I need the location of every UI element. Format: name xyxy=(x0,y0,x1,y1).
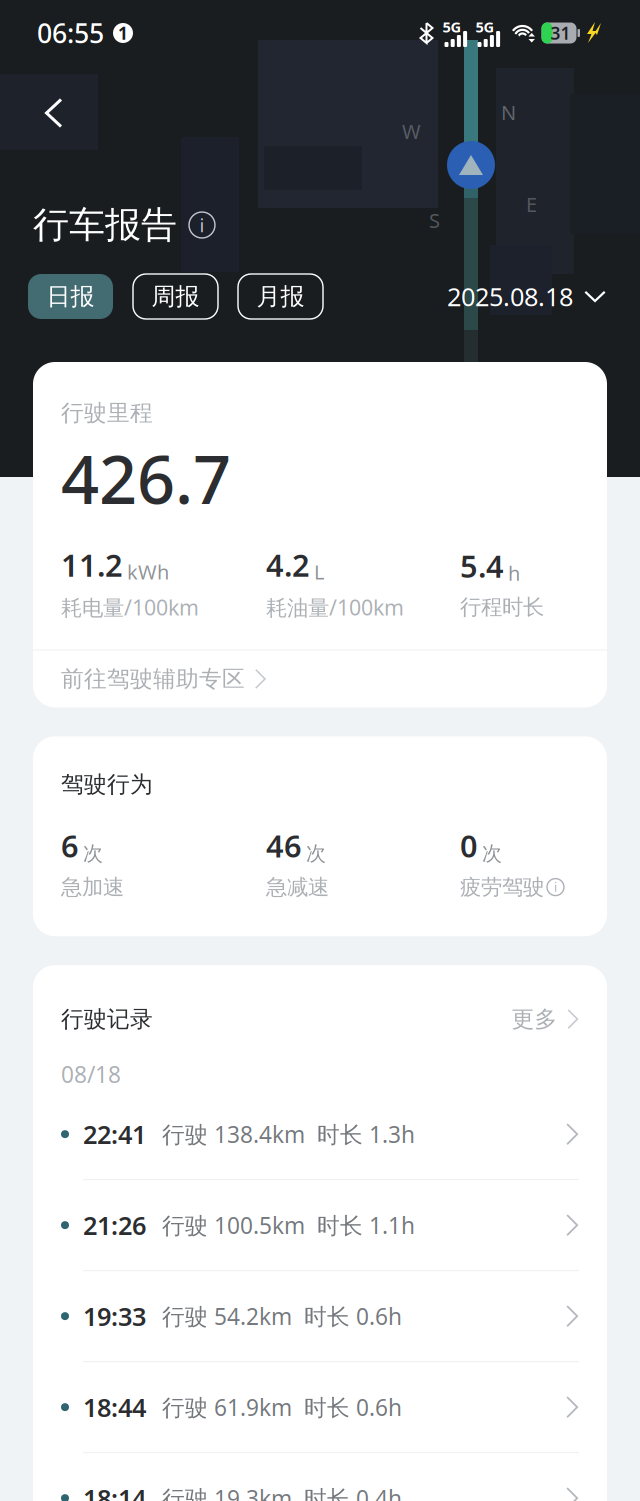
staticText: L xyxy=(314,558,324,585)
staticText: 前往驾驶辅助专区 xyxy=(61,665,245,693)
staticText: 行驶 19.3km 时长 0.4h xyxy=(162,1483,402,1501)
staticText: i xyxy=(199,213,204,237)
staticText: 22:41 xyxy=(83,1117,146,1151)
button[interactable]: 21:26 xyxy=(61,1180,579,1270)
staticText: 0 xyxy=(460,825,478,866)
staticText: kWh xyxy=(127,558,169,585)
staticText: 31 xyxy=(550,21,570,44)
button[interactable]: 行驶记录 xyxy=(61,965,579,1033)
staticText: 11.2 xyxy=(61,544,123,585)
staticText: N xyxy=(501,99,516,126)
staticText: 次 xyxy=(482,841,502,866)
button[interactable]: 日报 xyxy=(28,274,113,319)
button[interactable]: 19:33 xyxy=(61,1271,579,1361)
button[interactable]: 18:14 xyxy=(61,1453,579,1501)
staticText: 耗油量/100km xyxy=(266,593,404,621)
staticText: 次 xyxy=(83,841,103,866)
staticText: S xyxy=(429,207,440,234)
staticText: i xyxy=(554,879,557,895)
staticText: 行程时长 xyxy=(460,594,544,620)
staticText: 驾驶行为 xyxy=(61,770,153,798)
staticText: 行驶记录 xyxy=(61,1005,153,1033)
staticText: 46 xyxy=(266,825,302,866)
staticText: 06:55 xyxy=(37,15,104,51)
button[interactable]: 前往驾驶辅助专区 xyxy=(33,650,607,707)
staticText: 2025.08.18 xyxy=(447,280,573,313)
staticText: E xyxy=(526,191,537,218)
staticText: 月报 xyxy=(256,282,304,311)
staticText: 19:33 xyxy=(83,1299,146,1333)
staticText: 急加速 xyxy=(61,874,124,900)
staticText: h xyxy=(508,560,520,586)
staticText: 行驶 100.5km 时长 1.1h xyxy=(162,1210,415,1240)
staticText: 更多 xyxy=(511,1005,557,1033)
staticText: 周报 xyxy=(151,282,199,311)
staticText: W xyxy=(402,118,421,145)
staticText: 行驶里程 xyxy=(61,399,153,427)
staticText: 行驶 138.4km 时长 1.3h xyxy=(162,1119,415,1149)
staticText: 1 xyxy=(118,21,128,44)
staticText: 疲劳驾驶 xyxy=(460,874,544,900)
staticText: 耗电量/100km xyxy=(61,593,199,621)
button[interactable]: 22:41 xyxy=(61,1089,579,1179)
staticText: 次 xyxy=(306,841,326,866)
button[interactable]: Back xyxy=(14,78,94,148)
staticText: 18:44 xyxy=(83,1390,146,1424)
staticText: 18:14 xyxy=(83,1481,146,1501)
staticText: 21:26 xyxy=(83,1208,146,1242)
staticText: 行驶 61.9km 时长 0.6h xyxy=(162,1392,402,1422)
button[interactable]: 月报 xyxy=(238,274,323,319)
staticText: 行车报告 xyxy=(33,203,177,247)
staticText: 急减速 xyxy=(266,874,329,900)
staticText: 426.7 xyxy=(61,434,231,522)
staticText: 4.2 xyxy=(266,544,310,585)
staticText: 5G xyxy=(442,17,461,36)
staticText: 08/18 xyxy=(61,1059,121,1089)
staticText: 日报 xyxy=(46,282,94,311)
staticText: 行驶 54.2km 时长 0.6h xyxy=(162,1301,402,1331)
staticText: 6 xyxy=(61,825,79,866)
button[interactable]: 2025.08.18 xyxy=(447,274,606,319)
staticText: 5G xyxy=(475,17,494,36)
button[interactable]: 18:44 xyxy=(61,1362,579,1452)
button[interactable]: 周报 xyxy=(133,274,218,319)
staticText: 5.4 xyxy=(460,545,504,586)
